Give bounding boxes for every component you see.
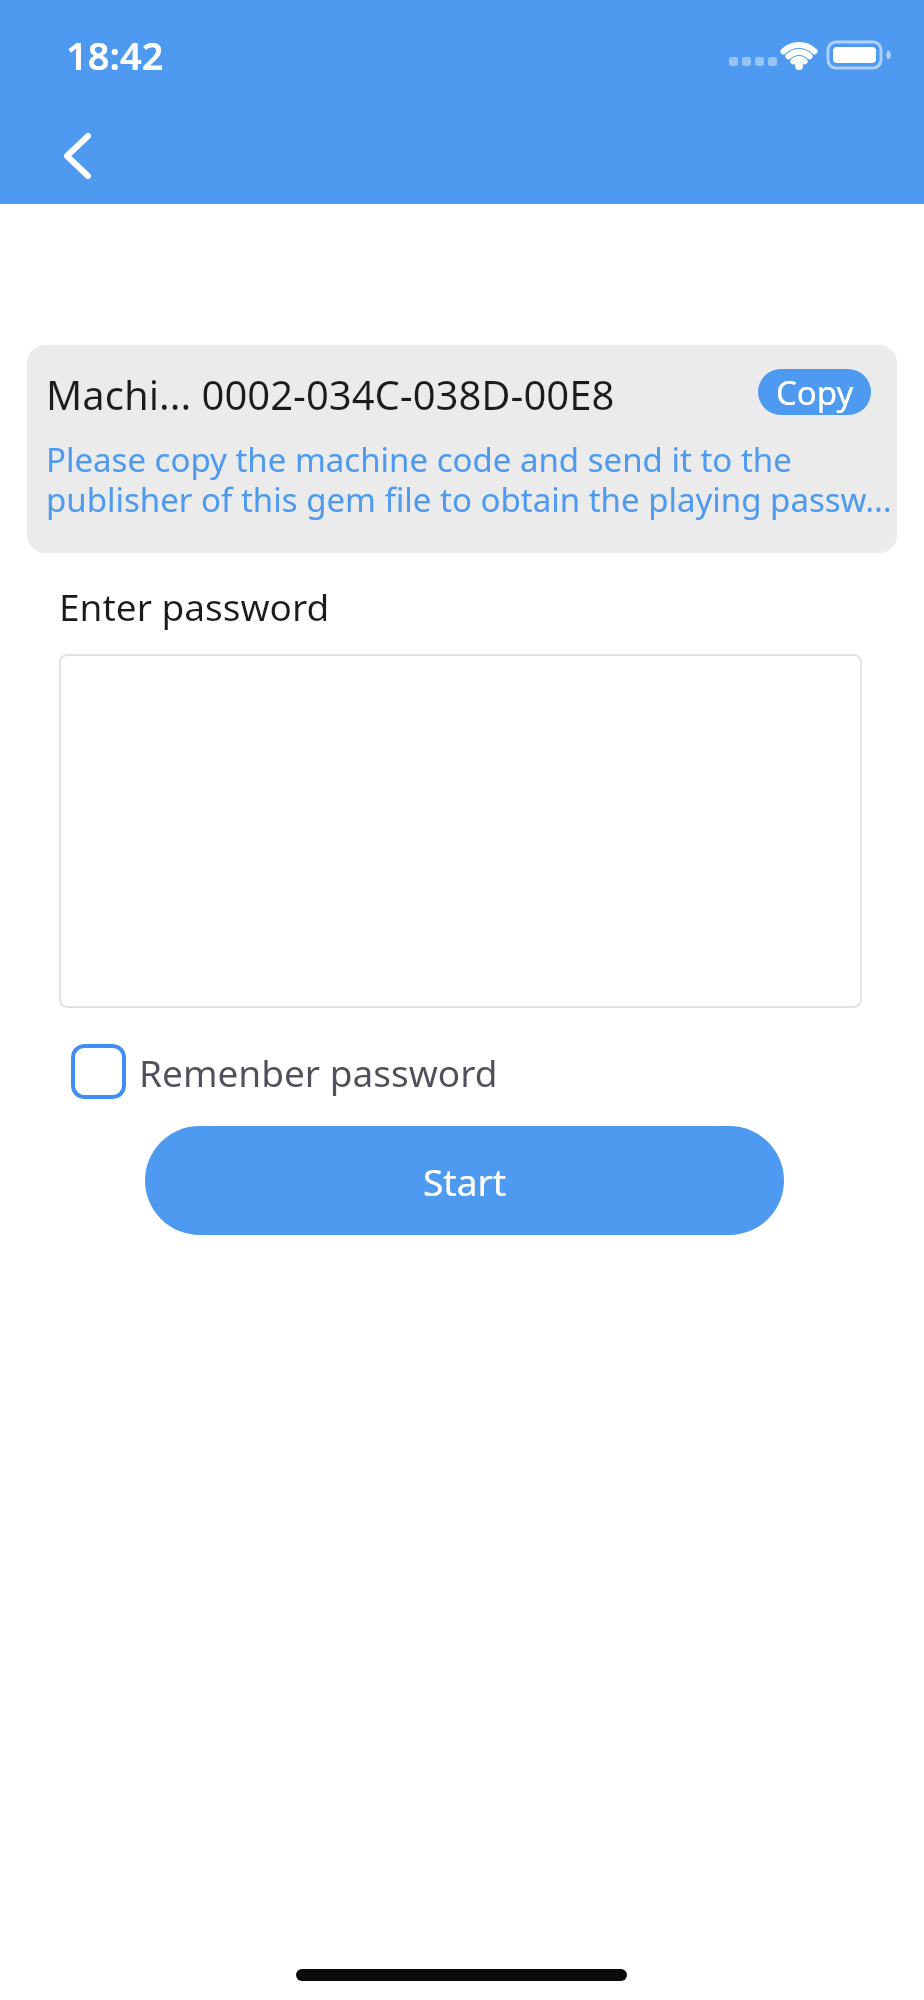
staticText: Remenber password <box>139 1047 498 1097</box>
staticText: Copy <box>776 370 854 415</box>
button[interactable]: Remenber password <box>71 1044 498 1099</box>
button[interactable]: Start <box>145 1126 784 1235</box>
staticText: Start <box>423 1156 507 1206</box>
button[interactable] <box>59 654 862 1008</box>
staticText: Machi... 0002-034C-038D-00E8 <box>46 367 615 421</box>
button[interactable]: Copy <box>758 369 871 415</box>
staticText: 18:42 <box>66 29 164 81</box>
button[interactable] <box>46 116 126 196</box>
staticText: Please copy the machine code and send it… <box>46 437 892 522</box>
staticText: Enter password <box>59 581 330 631</box>
